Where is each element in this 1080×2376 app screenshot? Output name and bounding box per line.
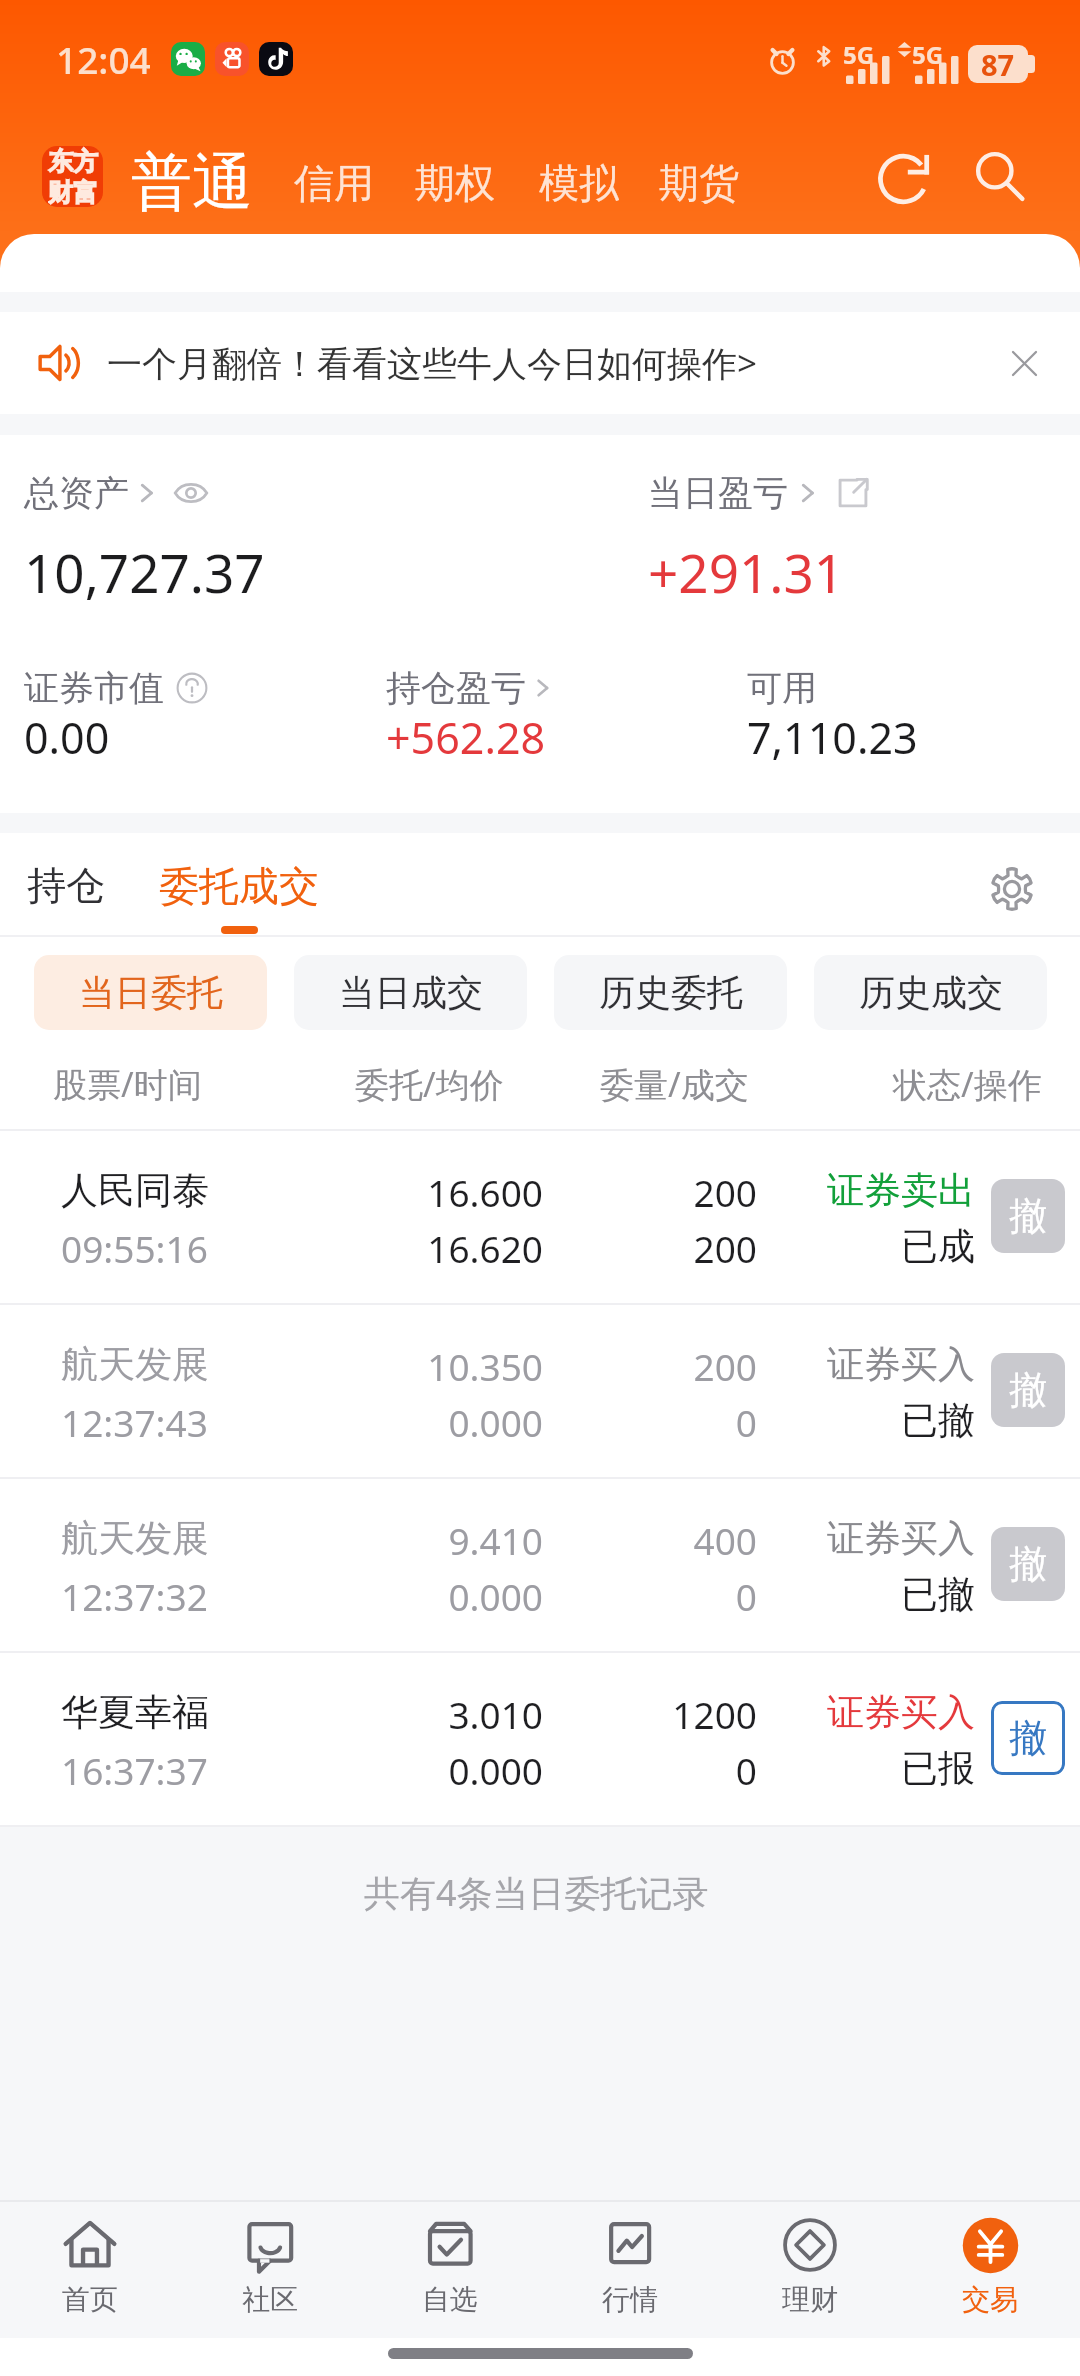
button[interactable]: 当日盈亏	[648, 471, 870, 515]
staticText: 证券买入	[775, 1341, 975, 1388]
button[interactable]: 华夏幸福	[0, 1653, 1080, 1825]
button[interactable]: 理财	[720, 2216, 900, 2317]
button[interactable]: 撤	[991, 1179, 1065, 1253]
staticText: +291.31	[648, 536, 845, 608]
button[interactable]: 持仓	[27, 861, 105, 910]
staticText: 5G	[843, 38, 875, 71]
button[interactable]: 委托成交	[159, 861, 319, 911]
staticText: 理财	[782, 2282, 838, 2317]
staticText: 共有4条当日委托记录	[364, 1868, 709, 1917]
button[interactable]: 撤	[991, 1701, 1065, 1775]
staticText: 首页	[62, 2282, 118, 2317]
staticText: 华夏幸福	[61, 1689, 209, 1736]
button[interactable]: 历史成交	[814, 955, 1047, 1030]
button[interactable]: 模拟	[539, 158, 619, 208]
staticText: 财富	[48, 177, 98, 207]
staticText: 撤	[1009, 1714, 1047, 1762]
staticText: 历史委托	[599, 970, 743, 1015]
staticText: 9.410	[243, 1515, 543, 1565]
staticText: 0.00	[24, 708, 110, 767]
staticText: 200	[557, 1223, 757, 1273]
button[interactable]: 自选	[360, 2216, 540, 2317]
button[interactable]: 持仓盈亏	[386, 666, 556, 710]
button[interactable]: Refresh	[874, 148, 936, 210]
staticText: 12:37:32	[61, 1571, 208, 1621]
button[interactable]: 东方	[42, 146, 103, 207]
staticText: 已成	[775, 1223, 975, 1270]
staticText: 撤	[1009, 1366, 1047, 1414]
staticText: 16.620	[243, 1223, 543, 1273]
staticText: 可用	[747, 666, 817, 710]
staticText: 16.600	[243, 1167, 543, 1217]
staticText: 10,727.37	[24, 536, 265, 608]
staticText: 已撤	[775, 1397, 975, 1444]
button[interactable]: 期货	[659, 158, 739, 208]
staticText: 已撤	[775, 1571, 975, 1618]
button[interactable]: 行情	[540, 2216, 720, 2317]
staticText: 09:55:16	[61, 1223, 208, 1273]
staticText: 期货	[659, 158, 739, 208]
staticText: 状态/操作	[893, 1061, 1042, 1107]
button[interactable]: Close	[996, 335, 1052, 391]
button[interactable]: 社区	[180, 2216, 360, 2317]
button[interactable]: 航天发展	[0, 1479, 1080, 1651]
staticText: 交易	[962, 2282, 1018, 2317]
staticText: 0.000	[243, 1745, 543, 1795]
staticText: 模拟	[539, 158, 619, 208]
staticText: 东方	[48, 146, 98, 177]
staticText: 16:37:37	[61, 1745, 208, 1795]
button[interactable]: 一个月翻倍！看看这些牛人今日如何操作>	[0, 312, 1080, 414]
staticText: 人民同泰	[61, 1167, 209, 1214]
staticText: 200	[557, 1341, 757, 1391]
staticText: 0.000	[243, 1571, 543, 1621]
button[interactable]: 证券市值	[24, 666, 208, 710]
staticText: 总资产	[24, 471, 129, 515]
staticText: 0	[557, 1745, 757, 1795]
button[interactable]: 期权	[415, 158, 495, 208]
button[interactable]: 总资产	[24, 471, 209, 515]
staticText: 7,110.23	[747, 708, 918, 767]
staticText: 12:04	[56, 34, 151, 84]
staticText: 期权	[415, 158, 495, 208]
staticText: 撤	[1009, 1540, 1047, 1588]
staticText: 0.000	[243, 1397, 543, 1447]
button[interactable]: 撤	[991, 1353, 1065, 1427]
button[interactable]: 信用	[294, 158, 374, 208]
staticText: 0	[557, 1397, 757, 1447]
button[interactable]: 当日委托	[34, 955, 267, 1030]
button[interactable]: 历史委托	[554, 955, 787, 1030]
staticText: 400	[557, 1515, 757, 1565]
staticText: 普通	[131, 144, 253, 221]
staticText: +562.28	[386, 708, 546, 767]
staticText: 3.010	[243, 1689, 543, 1739]
staticText: 一个月翻倍！看看这些牛人今日如何操作>	[107, 339, 758, 387]
button[interactable]: 航天发展	[0, 1305, 1080, 1477]
staticText: 证券买入	[775, 1515, 975, 1562]
button[interactable]: Search	[969, 146, 1031, 208]
staticText: 证券市值	[24, 666, 164, 710]
button[interactable]: 撤	[991, 1527, 1065, 1601]
staticText: 社区	[242, 2282, 298, 2317]
staticText: 当日盈亏	[648, 471, 788, 515]
staticText: 行情	[602, 2282, 658, 2317]
button[interactable]: 人民同泰	[0, 1131, 1080, 1303]
button[interactable]: 交易	[900, 2216, 1080, 2317]
staticText: 委托成交	[159, 861, 319, 911]
staticText: 股票/时间	[53, 1061, 202, 1107]
staticText: 1200	[557, 1689, 757, 1739]
staticText: 航天发展	[61, 1515, 209, 1562]
button[interactable]: 当日成交	[294, 955, 527, 1030]
staticText: 已报	[775, 1745, 975, 1792]
button[interactable]: 普通	[131, 144, 253, 221]
staticText: 撤	[1009, 1192, 1047, 1240]
staticText: 历史成交	[859, 970, 1003, 1015]
staticText: 5G	[912, 38, 944, 71]
button[interactable]: 首页	[0, 2216, 180, 2317]
staticText: 87	[981, 45, 1015, 83]
staticText: 持仓盈亏	[386, 666, 526, 710]
button[interactable]: Settings	[984, 861, 1040, 917]
staticText: 200	[557, 1167, 757, 1217]
staticText: 委量/成交	[600, 1061, 749, 1107]
staticText: 信用	[294, 158, 374, 208]
staticText: 0	[557, 1571, 757, 1621]
